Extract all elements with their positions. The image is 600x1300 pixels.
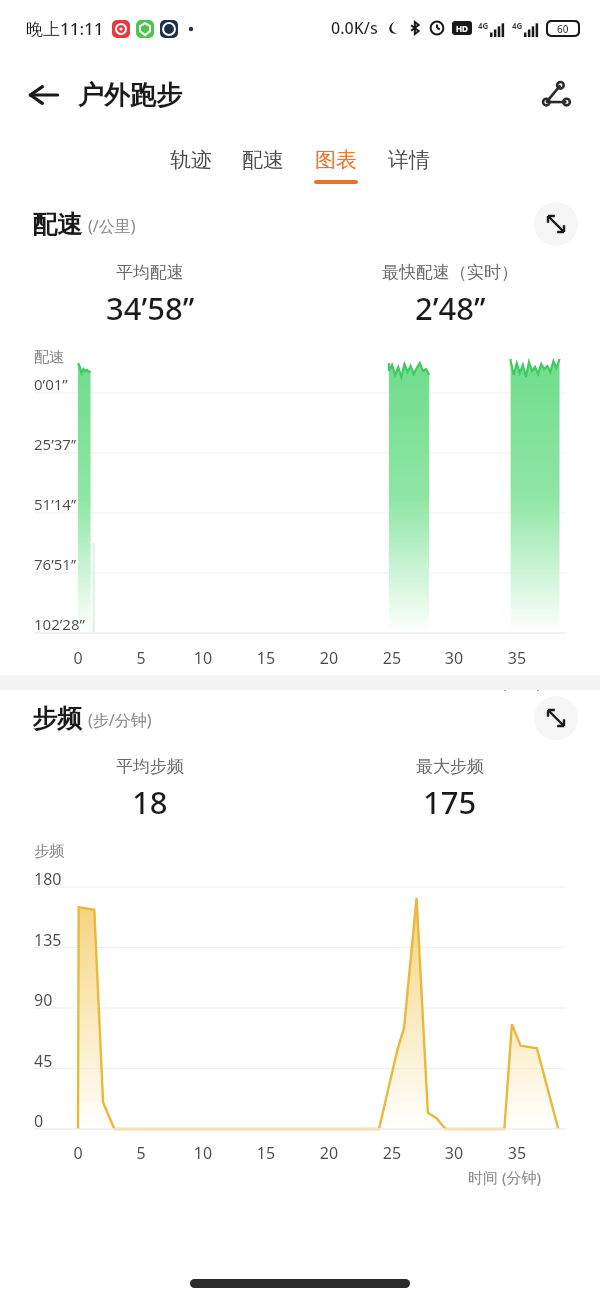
staticText: 5 — [121, 1142, 161, 1164]
staticText: 4G — [512, 20, 523, 31]
staticText: 30 — [434, 647, 474, 669]
staticText: 10 — [183, 647, 223, 669]
button[interactable]: 图表 — [312, 147, 360, 184]
staticText: 34’58’’ — [106, 287, 195, 329]
staticText: 175 — [423, 781, 477, 823]
staticText: 25 — [372, 1142, 412, 1164]
staticText: 15 — [246, 647, 286, 669]
staticText: 轨迹 — [170, 147, 212, 173]
staticText: (/公里) — [88, 215, 136, 237]
staticText: 时间 (分钟) — [468, 1167, 541, 1187]
staticText: 135 — [34, 929, 62, 951]
staticText: 详情 — [388, 147, 430, 173]
staticText: 图表 — [315, 147, 357, 173]
staticText: 4G — [478, 20, 489, 31]
staticText: 60 — [557, 22, 569, 35]
staticText: 76’51’’ — [34, 554, 77, 574]
staticText: 0.0K/s — [331, 17, 378, 39]
staticText: 25 — [372, 647, 412, 669]
button[interactable]: 配速 — [240, 147, 286, 180]
staticText: 30 — [434, 1142, 474, 1164]
other: Back — [24, 75, 64, 115]
staticText: 最快配速（实时） — [382, 262, 518, 283]
staticText: 晚上11:11 — [26, 17, 104, 40]
staticText: 平均步频 — [116, 756, 184, 777]
staticText: 0’01’’ — [34, 374, 68, 394]
staticText: 35 — [497, 1142, 537, 1164]
staticText: 35 — [497, 647, 537, 669]
staticText: 0 — [58, 1142, 98, 1164]
staticText: 45 — [34, 1050, 53, 1072]
button[interactable]: Share — [534, 73, 578, 117]
staticText: 102’28’’ — [34, 614, 85, 634]
staticText: 5 — [121, 647, 161, 669]
staticText: 18 — [132, 781, 168, 823]
staticText: (步/分钟) — [88, 709, 152, 731]
staticText: 15 — [246, 1142, 286, 1164]
staticText: 2’48’’ — [415, 287, 486, 329]
staticText: 51’14’’ — [34, 494, 77, 514]
button[interactable]: 轨迹 — [168, 147, 214, 180]
staticText: 户外跑步 — [78, 79, 182, 112]
staticText: 配速 — [32, 209, 82, 240]
staticText: 10 — [183, 1142, 223, 1164]
staticText: 0 — [34, 1110, 44, 1132]
staticText: 25’37’’ — [34, 434, 77, 454]
staticText: 90 — [34, 989, 53, 1011]
staticText: 配速 — [34, 348, 64, 367]
staticText: 180 — [34, 868, 62, 890]
staticText: 步频 — [34, 842, 64, 861]
staticText: 平均配速 — [116, 262, 184, 283]
staticText: 20 — [309, 1142, 349, 1164]
staticText: 步频 — [32, 703, 82, 734]
staticText: 最大步频 — [416, 756, 484, 777]
staticText: 0 — [58, 647, 98, 669]
button[interactable]: Expand pace chart — [534, 202, 578, 246]
staticText: 20 — [309, 647, 349, 669]
staticText: 时间 (分钟) — [468, 672, 541, 692]
button[interactable]: Back — [24, 75, 182, 115]
staticText: HD — [456, 23, 468, 34]
staticText: 配速 — [242, 147, 284, 173]
button[interactable]: Expand cadence chart — [534, 696, 578, 740]
button[interactable]: 详情 — [386, 147, 432, 180]
